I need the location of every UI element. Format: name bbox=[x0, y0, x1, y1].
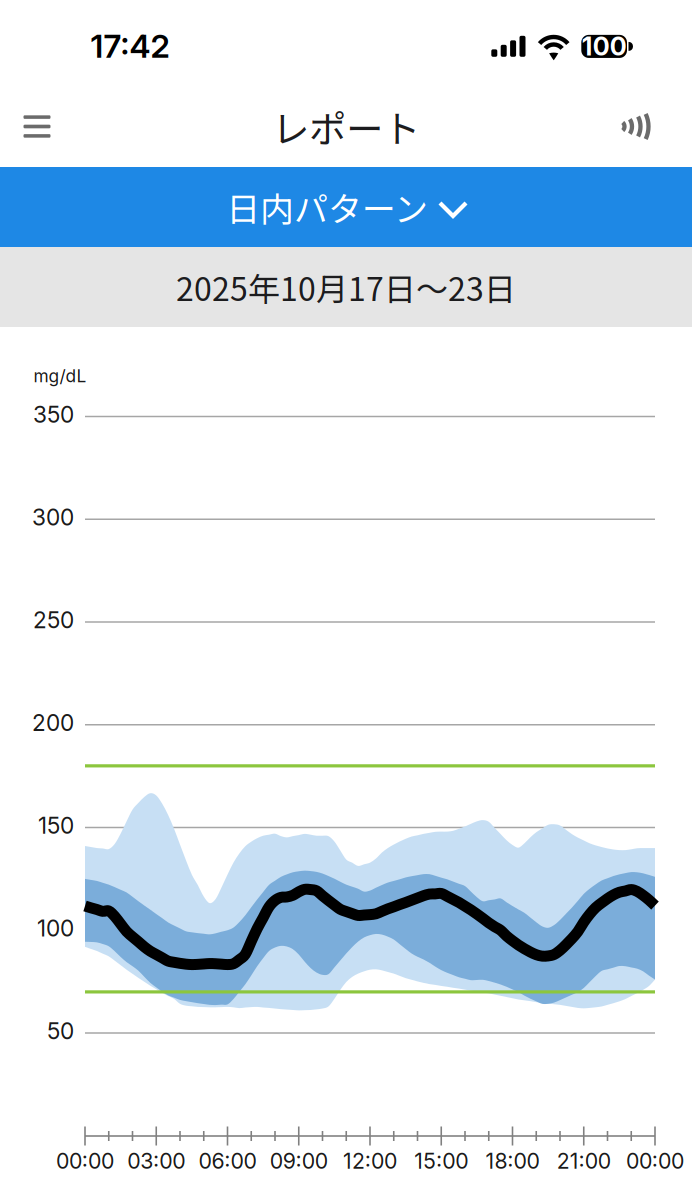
staticText: mg/dL bbox=[33, 365, 86, 386]
staticText: 06:00 bbox=[198, 1148, 256, 1174]
staticText: 21:00 bbox=[557, 1148, 611, 1174]
staticText: 00:00 bbox=[626, 1148, 684, 1174]
staticText: 15:00 bbox=[414, 1148, 468, 1174]
button[interactable]: Scan sensor bbox=[617, 88, 684, 164]
staticText: 2025年10月17日〜23日 bbox=[176, 264, 516, 310]
staticText: 09:00 bbox=[270, 1148, 328, 1174]
button[interactable]: 日内パターン bbox=[0, 167, 692, 247]
staticText: 300 bbox=[32, 503, 74, 531]
staticText: 150 bbox=[38, 812, 74, 839]
staticText: 250 bbox=[33, 606, 74, 634]
button[interactable]: Menu bbox=[0, 88, 74, 164]
staticText: 03:00 bbox=[127, 1148, 185, 1174]
staticText: 100 bbox=[37, 914, 74, 942]
staticText: 350 bbox=[33, 401, 74, 428]
staticText: レポート bbox=[272, 99, 420, 154]
staticText: 18:00 bbox=[485, 1148, 539, 1174]
staticText: 100 bbox=[582, 31, 627, 62]
staticText: 12:00 bbox=[343, 1148, 397, 1174]
staticText: 50 bbox=[47, 1017, 74, 1045]
staticText: 00:00 bbox=[56, 1148, 114, 1174]
staticText: 日内パターン bbox=[226, 182, 428, 232]
staticText: 200 bbox=[32, 709, 74, 736]
staticText: 17:42 bbox=[90, 27, 169, 65]
